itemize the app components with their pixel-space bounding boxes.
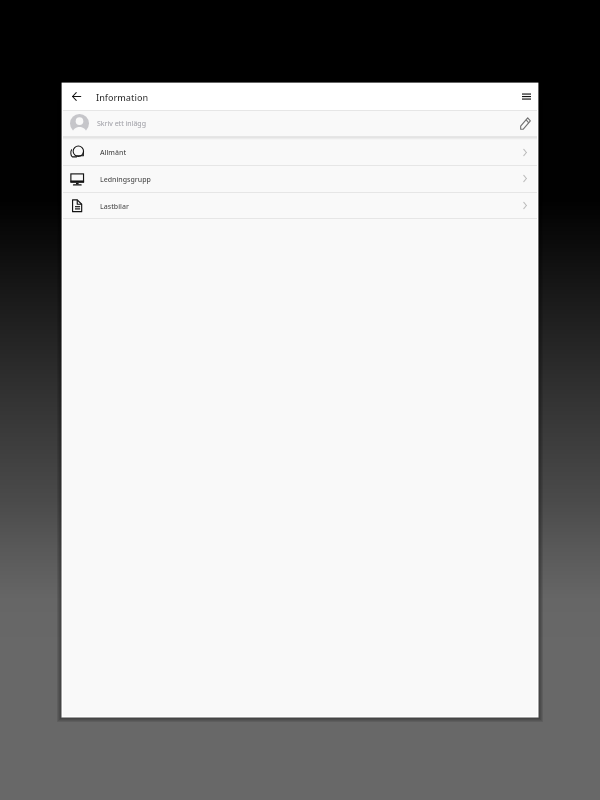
button[interactable]: Lastbilar [63, 192, 537, 219]
button[interactable]: Ledningsgrupp [63, 165, 537, 192]
button[interactable]: Allmänt [63, 139, 537, 165]
button[interactable]: Menu [515, 83, 537, 110]
button[interactable]: Skriv ett inlägg [63, 110, 537, 136]
staticText: Ledningsgrupp [100, 175, 151, 185]
button[interactable]: Edit [513, 110, 537, 136]
staticText: Skriv ett inlägg [97, 119, 146, 129]
staticText: Lastbilar [100, 202, 129, 212]
staticText: Information [96, 91, 149, 103]
button[interactable]: Back [64, 83, 88, 110]
staticText: Allmänt [100, 148, 127, 158]
